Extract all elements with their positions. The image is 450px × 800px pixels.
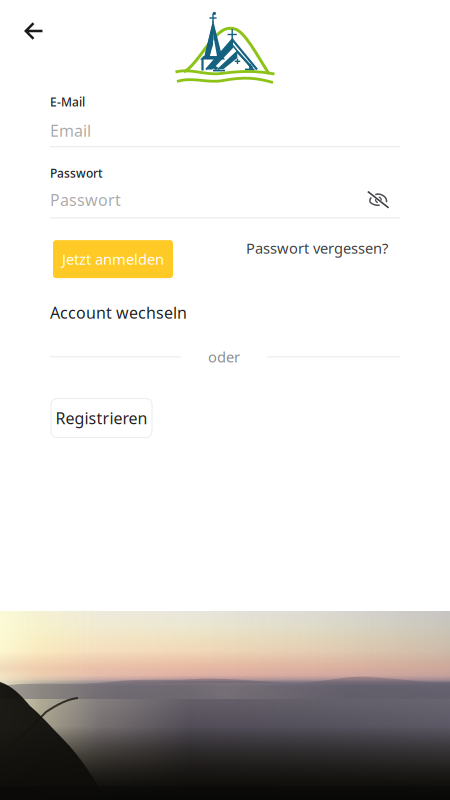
button[interactable]: Account wechseln [50, 302, 187, 323]
staticText: oder [208, 347, 240, 367]
staticText: E-Mail [50, 94, 85, 110]
button[interactable]: Passwort vergessen? [246, 238, 388, 280]
staticText: Account wechseln [50, 302, 187, 323]
button[interactable]: Back [13, 10, 55, 52]
staticText: Passwort [50, 189, 121, 210]
button[interactable]: Registrieren [51, 399, 152, 438]
staticText: Passwort vergessen? [246, 238, 388, 258]
staticText: Registrieren [55, 407, 147, 429]
button[interactable]: Jetzt anmelden [53, 240, 173, 278]
staticText: Email [50, 120, 91, 141]
staticText: Jetzt anmelden [62, 249, 164, 269]
staticText: Passwort [50, 165, 103, 181]
button[interactable]: Show password [367, 190, 390, 209]
